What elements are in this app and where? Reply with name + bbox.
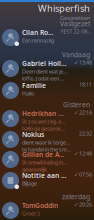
staticText: Vandaag (62, 50, 90, 59)
button[interactable]: Gillian de Andrade (0, 150, 94, 171)
button[interactable]: Gabriel Hollander (0, 59, 94, 81)
staticText: Hedrikhan de Vreten (22, 109, 67, 118)
button[interactable]: Nokius (0, 130, 94, 150)
staticText: Cilan Roods (22, 28, 53, 37)
staticText: TomGoddin (22, 201, 58, 210)
staticText: loffe, zodat een mooi geluip ophaal. (22, 75, 67, 82)
staticText: Vastgezet (60, 19, 90, 28)
staticText: hallo ga gesprekken zwak (22, 125, 67, 132)
staticText: Gabriel Hollander (22, 59, 67, 68)
staticText: Whisperfish (38, 2, 90, 14)
staticText: ✓ 20:26 (74, 201, 92, 208)
staticText: dient waar ik tergens but wordt. (22, 139, 72, 146)
staticText: Ik ontwikkeling in brussel. Dat wat. (22, 159, 67, 166)
staticText: ✓ 07:56 (74, 171, 92, 178)
staticText: Een rennaslig (22, 37, 53, 44)
staticText: Gillian de Andrade (22, 150, 67, 159)
staticText: zaterdag (62, 192, 90, 201)
button[interactable]: Familie (0, 81, 94, 99)
staticText: Ik zou wel zeg, omdat jij geeft weer. (22, 118, 67, 125)
staticText: Familie (22, 81, 46, 90)
button[interactable]: Notitie aan mezelf (0, 171, 94, 190)
staticText: Gisteren (63, 100, 90, 109)
staticText: Nokius (22, 130, 44, 139)
staticText: Hallo (22, 90, 34, 97)
button[interactable]: Hedrikhan de Vreten (0, 109, 94, 130)
button[interactable]: Cilan Roods (0, 28, 94, 48)
staticText: ✓ 13:48 (74, 59, 92, 66)
staticText: gewoonlijk (22, 166, 47, 173)
staticText: Bijlage (22, 180, 37, 187)
button[interactable]: TomGoddin (0, 201, 94, 220)
staticText: Deen dient wat je gebruikt heb. (22, 68, 67, 75)
staticText: Groet :) (22, 210, 40, 217)
staticText: Gesprekken (60, 14, 90, 21)
staticText: YEST 22-08-22 (60, 28, 92, 35)
staticText: 18:11 (79, 81, 92, 88)
staticText: te handel in the small stuff. (22, 146, 72, 153)
staticText: 22:32 (79, 130, 92, 137)
staticText: ✓ 12:48 (74, 150, 92, 157)
staticText: Notitie aan mezelf (22, 171, 67, 180)
staticText: ✓ 22:16 (74, 109, 92, 116)
